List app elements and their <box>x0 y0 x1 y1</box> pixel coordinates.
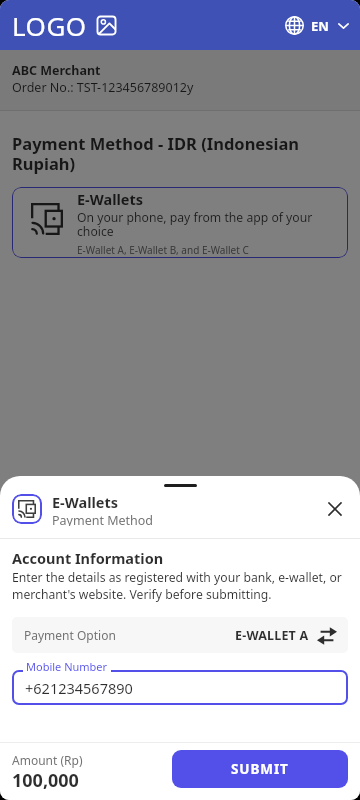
staticText: E-WALLET A <box>235 627 309 644</box>
button[interactable]: Language EN <box>266 8 360 43</box>
button[interactable]: Close <box>320 494 350 524</box>
staticText: EN <box>311 17 329 35</box>
staticText: LOGO <box>12 8 87 43</box>
staticText: E-Wallets <box>77 189 144 209</box>
staticText: E-Wallet A, E-Wallet B, and E-Wallet C <box>77 243 249 257</box>
staticText: SUBMIT <box>231 760 289 778</box>
button[interactable]: SUBMIT <box>172 750 348 788</box>
staticText: Payment Method - IDR (Indonesian Rupiah) <box>12 132 324 175</box>
staticText: 100,000 <box>12 768 79 793</box>
staticText: +621234567890 <box>25 678 133 698</box>
staticText: Payment Option <box>24 627 116 643</box>
staticText: Enter the details as registered with you… <box>12 569 350 603</box>
staticText: Order No.: TST-123456789012y <box>12 79 194 96</box>
staticText: Payment Method <box>52 512 154 526</box>
staticText: On your phone, pay from the app of your … <box>77 209 332 240</box>
button[interactable]: Payment Option <box>12 617 348 653</box>
staticText: ABC Merchant <box>12 62 101 79</box>
button[interactable]: E-Wallets <box>12 187 348 258</box>
staticText: Account Information <box>12 548 164 568</box>
staticText: Mobile Number <box>26 659 108 674</box>
staticText: E-Wallets <box>52 492 119 512</box>
staticText: Amount (Rp) <box>12 752 83 768</box>
